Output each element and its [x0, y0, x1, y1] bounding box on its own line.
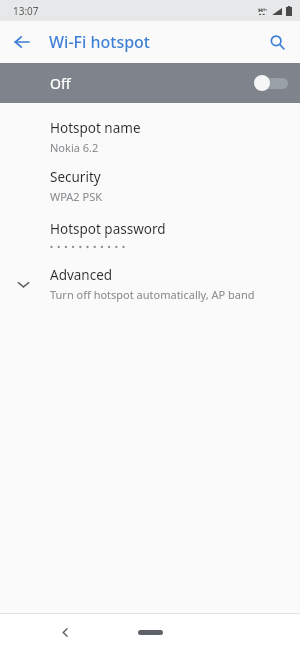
button[interactable]: Search — [260, 25, 294, 59]
staticText: Advanced — [50, 266, 113, 284]
staticText: WPA2 PSK — [50, 189, 103, 204]
staticText: Turn off hotspot automatically, AP band — [50, 287, 255, 302]
button[interactable]: Back — [51, 618, 79, 646]
staticText: Off — [50, 74, 71, 93]
staticText: 13:07 — [13, 4, 39, 18]
button[interactable]: Off — [0, 63, 300, 103]
button[interactable]: Hotspot name — [0, 112, 300, 161]
staticText: Wi-Fi hotspot — [49, 31, 150, 53]
other: Hotspot toggle — [254, 73, 288, 93]
staticText: Nokia 6.2 — [50, 140, 99, 155]
staticText: Security — [50, 168, 101, 186]
button[interactable]: Home — [120, 620, 180, 644]
staticText: Hotspot name — [50, 119, 141, 137]
button[interactable]: Hotspot password — [0, 210, 300, 259]
button[interactable]: Advanced — [0, 259, 300, 308]
button[interactable]: Back — [5, 25, 39, 59]
button[interactable]: Security — [0, 161, 300, 210]
staticText: Hotspot password — [50, 220, 166, 238]
